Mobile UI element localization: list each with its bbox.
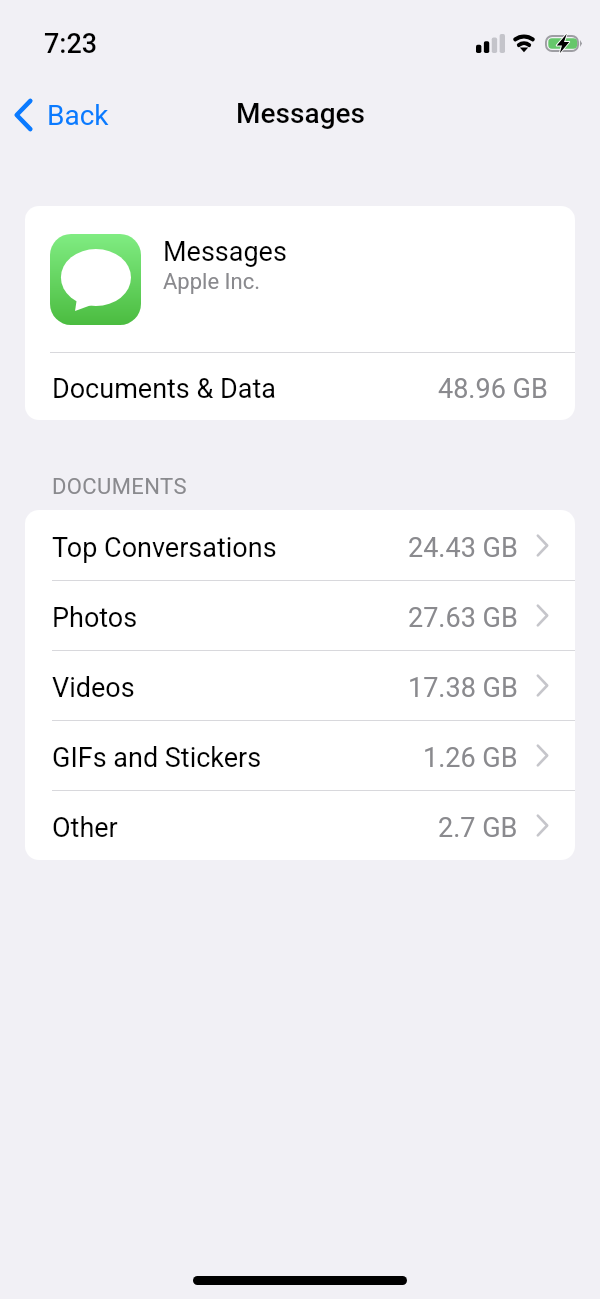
staticText: 48.96 GB (438, 373, 548, 405)
staticText: Top Conversations (52, 532, 277, 564)
staticText: 1.26 GB (423, 742, 518, 774)
staticText: Messages (163, 236, 287, 268)
staticText: Documents & Data (52, 373, 276, 405)
other: Open (536, 534, 549, 557)
staticText: 17.38 GB (408, 672, 518, 704)
button[interactable]: Messages (25, 206, 575, 352)
staticText: DOCUMENTS (52, 473, 187, 499)
staticText: 27.63 GB (408, 602, 518, 634)
staticText: 7:23 (44, 28, 98, 60)
other: Open (536, 814, 549, 837)
other: Open (536, 674, 549, 697)
staticText: GIFs and Stickers (52, 742, 262, 774)
staticText: 2.7 GB (438, 812, 518, 844)
button[interactable]: GIFs and Stickers (25, 720, 575, 790)
button[interactable]: Top Conversations (25, 510, 575, 580)
staticText: Other (52, 812, 118, 844)
other: Open (536, 604, 549, 627)
other: Back (14, 99, 33, 131)
staticText: Apple Inc. (163, 268, 260, 294)
staticText: Photos (52, 602, 138, 634)
button[interactable]: Back (8, 89, 115, 138)
button[interactable]: Documents & Data (25, 352, 575, 420)
staticText: Messages (236, 97, 365, 130)
button[interactable]: Photos (25, 580, 575, 650)
staticText: 24.43 GB (408, 532, 518, 564)
button[interactable]: Videos (25, 650, 575, 720)
button[interactable]: Other (25, 790, 575, 860)
other: Open (536, 744, 549, 767)
staticText: Videos (52, 672, 135, 704)
staticText: Back (47, 99, 109, 132)
